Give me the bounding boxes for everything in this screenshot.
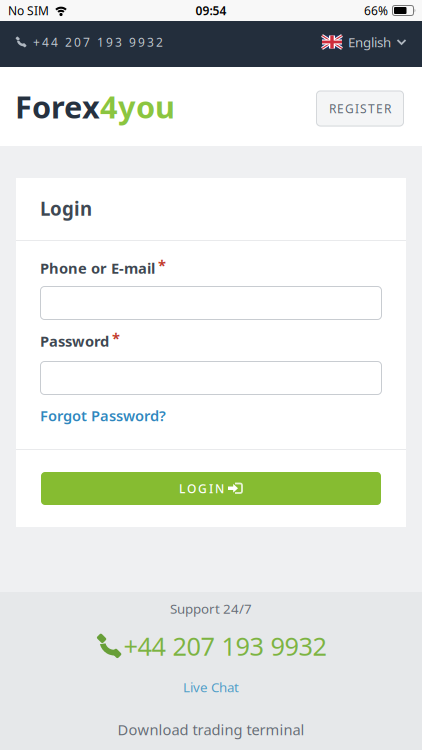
staticText: * [158, 255, 166, 275]
staticText: Forex [15, 86, 100, 127]
staticText: 4you [100, 86, 175, 127]
button[interactable]: Live Chat [183, 678, 239, 696]
button[interactable]: Download trading terminal [117, 719, 304, 740]
staticText: + 4 4 2 0 7 1 9 3 9 9 3 2 [33, 34, 163, 50]
staticText: Download trading terminal [117, 720, 304, 739]
staticText: English [348, 33, 391, 51]
staticText: * [112, 328, 120, 348]
staticText: Live Chat [183, 678, 239, 696]
staticText: 66% [364, 2, 388, 18]
staticText: L O G I N [179, 480, 224, 496]
button[interactable]: L O G I N [41, 472, 381, 505]
staticText: Forgot Password? [40, 406, 166, 425]
staticText: +44 207 193 9932 [123, 629, 326, 663]
staticText: R E G I S T E R [329, 100, 391, 116]
staticText: Password [40, 331, 109, 351]
button[interactable]: Forgot Password? [40, 405, 166, 426]
staticText: Support 24/7 [170, 600, 252, 617]
button[interactable]: +44 207 193 9932 [95, 627, 326, 665]
staticText: Login [40, 196, 92, 221]
button[interactable]: + 4 4 2 0 7 1 9 3 9 9 3 2 [15, 34, 163, 50]
staticText: No SIM [8, 2, 49, 18]
staticText: 09:54 [195, 2, 226, 18]
button[interactable]: English [322, 33, 406, 51]
button[interactable]: R E G I S T E R [316, 88, 404, 124]
staticText: Phone or E-mail [40, 258, 155, 278]
